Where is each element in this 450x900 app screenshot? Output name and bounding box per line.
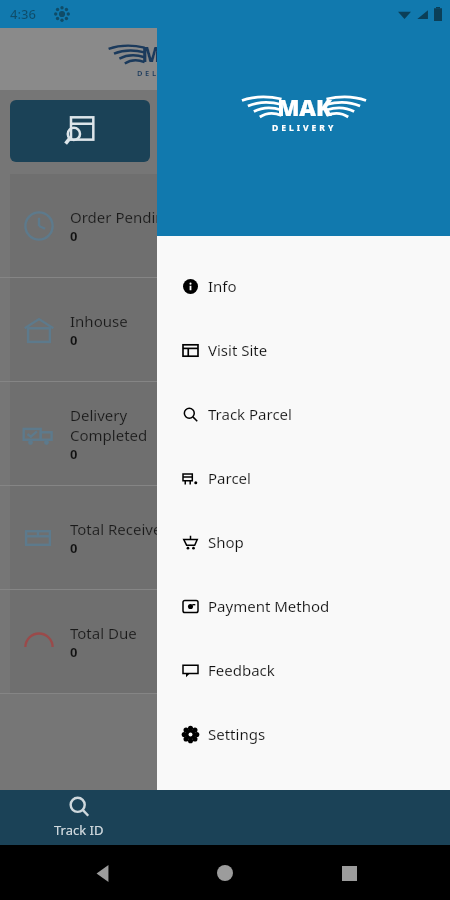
button[interactable]: Home bbox=[203, 851, 247, 895]
button[interactable]: Info bbox=[157, 254, 450, 318]
button[interactable]: Inhouse bbox=[10, 278, 440, 381]
button[interactable]: Payment Method bbox=[157, 574, 450, 638]
staticText: Total Due bbox=[70, 623, 137, 643]
staticText: DELIVERY bbox=[137, 68, 194, 78]
button[interactable]: Visit Site bbox=[157, 318, 450, 382]
button[interactable]: Settings bbox=[157, 702, 450, 766]
staticText: Info bbox=[208, 276, 237, 296]
staticText: Delivery Completed bbox=[70, 405, 148, 445]
staticText: 0 bbox=[70, 227, 78, 245]
staticText: MAK bbox=[141, 40, 190, 68]
button[interactable]: Track Parcel bbox=[157, 382, 450, 446]
staticText: 0 bbox=[70, 539, 78, 557]
staticText: Settings bbox=[208, 724, 266, 744]
button[interactable]: Order Pending bbox=[10, 174, 440, 277]
button[interactable]: Delivery Completed bbox=[10, 382, 440, 485]
staticText: 0 bbox=[70, 445, 78, 463]
button[interactable]: Track ID bbox=[0, 790, 157, 845]
staticText: Logout bbox=[208, 788, 258, 808]
staticText: Total Received bbox=[70, 519, 171, 539]
staticText: Feedback bbox=[208, 660, 275, 680]
button[interactable]: Total Due bbox=[10, 590, 440, 693]
button[interactable]: Recents bbox=[327, 851, 371, 895]
staticText: 0 bbox=[70, 643, 78, 661]
staticText: Payment Method bbox=[208, 596, 330, 616]
button[interactable]: Logout bbox=[157, 766, 450, 830]
staticText: Inhouse bbox=[70, 311, 128, 331]
button[interactable] bbox=[10, 100, 150, 162]
staticText: DELIVERY bbox=[272, 122, 337, 134]
button[interactable]: Total Received bbox=[10, 486, 440, 589]
staticText: 0 bbox=[70, 331, 78, 349]
staticText: Parcel bbox=[208, 468, 251, 488]
staticText: MAK bbox=[277, 91, 332, 122]
button[interactable]: Shop bbox=[157, 510, 450, 574]
staticText: Visit Site bbox=[208, 340, 268, 360]
staticText: Track ID bbox=[54, 821, 104, 839]
button[interactable]: Back bbox=[80, 851, 124, 895]
staticText: Track Parcel bbox=[208, 404, 292, 424]
button[interactable]: Parcel bbox=[157, 446, 450, 510]
button[interactable]: Feedback bbox=[157, 638, 450, 702]
staticText: Order Pending bbox=[70, 207, 174, 227]
staticText: Shop bbox=[208, 532, 244, 552]
staticText: 4:36 bbox=[10, 5, 36, 23]
other: Track ID bbox=[68, 796, 90, 818]
